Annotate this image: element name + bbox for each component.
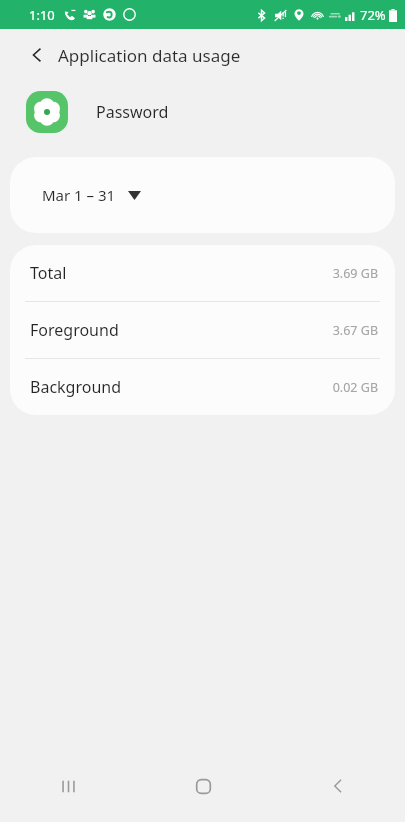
staticText: 72% (360, 6, 386, 24)
staticText: Background (30, 376, 122, 398)
button[interactable]: Background (10, 359, 395, 415)
staticText: 3.67 GB (332, 322, 378, 339)
staticText: Application data usage (58, 44, 241, 67)
button[interactable]: Recents (44, 762, 92, 810)
button[interactable]: Back (314, 762, 362, 810)
button[interactable]: Mar 1 – 31 (10, 157, 395, 233)
staticText: Password (96, 101, 169, 123)
button[interactable]: Back (22, 40, 52, 70)
staticText: 0.02 GB (332, 379, 378, 396)
staticText: Total (30, 262, 67, 284)
button[interactable]: Foreground (10, 302, 395, 358)
staticText: Mar 1 – 31 (42, 185, 116, 205)
staticText: 1:10 (29, 6, 55, 24)
staticText: 3.69 GB (332, 265, 378, 282)
button[interactable]: Home (179, 762, 227, 810)
staticText: Foreground (30, 319, 119, 341)
button[interactable]: Total (10, 245, 395, 301)
